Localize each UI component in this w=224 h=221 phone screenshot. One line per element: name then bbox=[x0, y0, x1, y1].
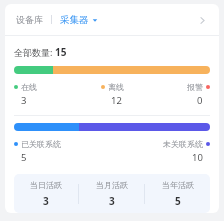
button[interactable]: 当年活跃 bbox=[145, 174, 210, 213]
staticText: 当年活跃 bbox=[162, 180, 194, 190]
staticText: 当日活跃 bbox=[30, 180, 62, 190]
staticText: 报警 bbox=[187, 82, 203, 92]
button[interactable]: 当日活跃 bbox=[14, 174, 78, 213]
staticText: 3 bbox=[21, 94, 27, 107]
staticText: 5 bbox=[175, 194, 181, 208]
button[interactable]: 离线 bbox=[80, 82, 145, 107]
staticText: 5 bbox=[21, 151, 27, 164]
staticText: 设备库 bbox=[16, 14, 43, 25]
staticText: 当月活跃 bbox=[96, 180, 128, 190]
staticText: 3 bbox=[109, 194, 115, 208]
staticText: 0 bbox=[197, 94, 203, 107]
button[interactable]: 当月活跃 bbox=[79, 174, 144, 213]
staticText: 10 bbox=[192, 151, 203, 164]
staticText: 已关联系统 bbox=[21, 139, 61, 149]
button[interactable]: 未关联系统 bbox=[112, 139, 210, 164]
staticText: 15 bbox=[55, 45, 67, 59]
staticText: 采集器 bbox=[60, 14, 89, 26]
staticText: 离线 bbox=[108, 82, 124, 92]
button[interactable]: More bbox=[194, 12, 210, 28]
staticText: 全部数量: bbox=[14, 46, 55, 58]
button[interactable]: 设备库 bbox=[14, 12, 45, 27]
staticText: 在线 bbox=[21, 82, 37, 92]
button[interactable]: 采集器 bbox=[58, 12, 100, 28]
button[interactable]: 已关联系统 bbox=[14, 139, 112, 164]
button[interactable]: 在线 bbox=[14, 82, 80, 107]
staticText: 12 bbox=[111, 94, 122, 107]
staticText: 未关联系统 bbox=[163, 139, 203, 149]
button[interactable]: 报警 bbox=[145, 82, 210, 107]
staticText: 3 bbox=[43, 194, 49, 208]
